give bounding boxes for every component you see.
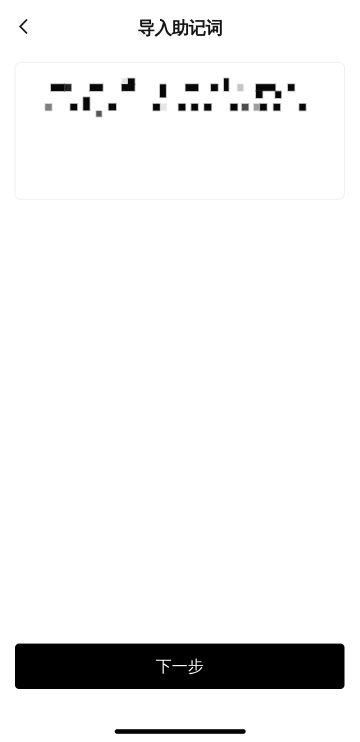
staticText: 导入助记词 xyxy=(137,18,222,39)
staticText: 下一步 xyxy=(156,656,204,676)
button[interactable]: Back xyxy=(8,10,40,42)
button[interactable]: 助记词输入框 xyxy=(15,62,344,199)
button[interactable]: 下一步 xyxy=(15,644,344,689)
